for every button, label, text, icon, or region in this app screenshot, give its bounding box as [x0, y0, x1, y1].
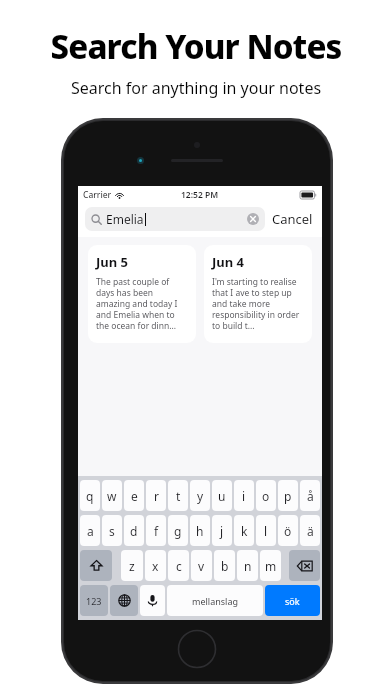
button[interactable]: å: [300, 480, 320, 511]
staticText: g: [174, 523, 182, 539]
button[interactable]: Jun 4: [204, 245, 312, 343]
button[interactable]: r: [146, 480, 166, 511]
button[interactable]: d: [124, 515, 144, 546]
button[interactable]: y: [190, 480, 210, 511]
button[interactable]: z: [121, 550, 143, 581]
button[interactable]: j: [212, 515, 232, 546]
button[interactable]: Switch keyboard: [110, 585, 138, 616]
staticText: The past couple of days has been amazing…: [96, 276, 188, 331]
staticText: s: [109, 523, 115, 539]
button[interactable]: Cancel: [265, 207, 315, 231]
button[interactable]: a: [80, 515, 100, 546]
staticText: c: [176, 558, 182, 574]
staticText: x: [152, 558, 159, 574]
staticText: f: [154, 523, 159, 539]
button[interactable]: Clear text: [247, 213, 259, 225]
staticText: d: [130, 523, 138, 539]
staticText: b: [221, 558, 229, 574]
staticText: Search for anything in your notes: [0, 77, 392, 99]
button[interactable]: h: [190, 515, 210, 546]
button[interactable]: ö: [278, 515, 298, 546]
staticText: n: [244, 558, 252, 574]
button[interactable]: s: [102, 515, 122, 546]
button[interactable]: w: [102, 480, 122, 511]
staticText: t: [176, 488, 181, 504]
button[interactable]: Backspace: [289, 550, 320, 581]
staticText: r: [154, 488, 159, 504]
button[interactable]: x: [145, 550, 166, 581]
button[interactable]: u: [212, 480, 232, 511]
button[interactable]: v: [191, 550, 212, 581]
button[interactable]: t: [168, 480, 188, 511]
button[interactable]: i: [234, 480, 254, 511]
button[interactable]: f: [146, 515, 166, 546]
staticText: m: [265, 558, 277, 574]
staticText: a: [87, 523, 94, 539]
staticText: Cancel: [272, 210, 313, 228]
button[interactable]: 123: [80, 585, 108, 616]
staticText: l: [264, 523, 268, 539]
button[interactable]: Home: [177, 629, 217, 669]
staticText: Jun 5: [96, 253, 129, 271]
button[interactable]: g: [168, 515, 188, 546]
staticText: z: [129, 558, 135, 574]
staticText: mellanslag: [192, 595, 238, 607]
staticText: sök: [285, 595, 300, 607]
staticText: 123: [86, 595, 102, 607]
button[interactable]: l: [256, 515, 276, 546]
staticText: h: [196, 523, 204, 539]
button[interactable]: mellanslag: [167, 585, 263, 616]
staticText: k: [241, 523, 248, 539]
staticText: 12:52 PM: [181, 189, 219, 201]
button[interactable]: q: [80, 480, 100, 511]
button[interactable]: Emelia: [85, 207, 265, 231]
staticText: Emelia: [106, 211, 144, 227]
staticText: Jun 4: [212, 253, 245, 271]
staticText: j: [220, 523, 224, 539]
staticText: e: [131, 488, 138, 504]
staticText: i: [242, 488, 246, 504]
button[interactable]: k: [234, 515, 254, 546]
button[interactable]: o: [256, 480, 276, 511]
button[interactable]: n: [237, 550, 258, 581]
staticText: Search Your Notes: [0, 24, 392, 69]
staticText: y: [197, 488, 204, 504]
staticText: u: [218, 488, 226, 504]
button[interactable]: m: [260, 550, 281, 581]
staticText: I'm starting to realise that I ave to st…: [212, 276, 304, 331]
staticText: o: [262, 488, 270, 504]
staticText: ä: [307, 523, 314, 539]
staticText: v: [198, 558, 205, 574]
staticText: p: [284, 488, 292, 504]
button[interactable]: sök: [265, 585, 320, 616]
button[interactable]: b: [214, 550, 235, 581]
staticText: w: [107, 488, 117, 504]
staticText: q: [86, 488, 94, 504]
staticText: Carrier: [83, 189, 112, 201]
staticText: ö: [284, 523, 292, 539]
button[interactable]: Jun 5: [88, 245, 196, 343]
staticText: å: [307, 488, 314, 504]
button[interactable]: ä: [300, 515, 320, 546]
button[interactable]: e: [124, 480, 144, 511]
button[interactable]: Shift: [80, 550, 112, 581]
button[interactable]: c: [168, 550, 189, 581]
button[interactable]: p: [278, 480, 298, 511]
button[interactable]: Dictate: [140, 585, 165, 616]
